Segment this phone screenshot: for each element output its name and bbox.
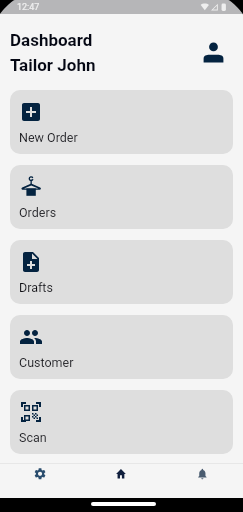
button[interactable]: Customer — [10, 315, 233, 379]
button[interactable]: Scan — [10, 390, 233, 454]
button[interactable]: Drafts — [10, 240, 233, 304]
staticText: New Order — [19, 130, 78, 145]
staticText: Drafts — [19, 280, 53, 295]
button[interactable]: Settings — [0, 464, 81, 485]
button[interactable]: Notifications — [162, 464, 243, 485]
staticText: Scan — [19, 430, 47, 445]
button[interactable]: Profile — [203, 38, 224, 63]
staticText: 12:47 — [17, 2, 40, 13]
button[interactable]: New Order — [10, 90, 233, 154]
button[interactable]: Orders — [10, 165, 233, 229]
staticText: Tailor John — [10, 55, 96, 75]
staticText: Orders — [19, 205, 57, 220]
staticText: Customer — [19, 355, 74, 370]
button[interactable]: Home — [81, 464, 162, 485]
staticText: Dashboard — [10, 30, 93, 50]
